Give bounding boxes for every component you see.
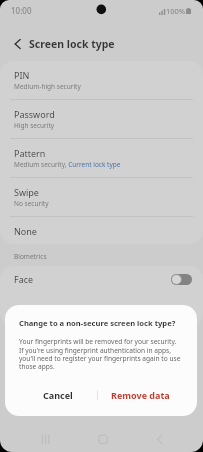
- staticText: PIN: [14, 69, 30, 81]
- staticText: Face: [14, 273, 34, 285]
- staticText: 10:00: [11, 5, 32, 16]
- staticText: Swipe: [14, 186, 39, 198]
- staticText: None: [14, 225, 37, 237]
- staticText: Medium-high security: [14, 82, 81, 91]
- button[interactable]: Recent apps: [33, 427, 57, 451]
- button[interactable]: Pattern: [0, 139, 203, 177]
- button[interactable]: Remove data: [98, 383, 183, 407]
- staticText: Biometrics: [14, 252, 47, 261]
- staticText: Medium security, Current lock type: [14, 160, 121, 169]
- staticText: No security: [14, 199, 49, 208]
- button[interactable]: Swipe: [0, 178, 203, 216]
- staticText: Remove data: [111, 389, 170, 401]
- button[interactable]: None: [0, 217, 203, 244]
- staticText: 100%: [166, 6, 185, 16]
- staticText: Cancel: [43, 389, 73, 401]
- staticText: Pattern: [14, 147, 46, 159]
- staticText: Screen lock type: [29, 37, 115, 51]
- staticText: High security: [14, 121, 55, 130]
- button[interactable]: Face: [0, 266, 203, 292]
- staticText: Password: [14, 108, 55, 120]
- button[interactable]: Password: [0, 100, 203, 138]
- staticText: Your fingerprints will be removed for yo…: [19, 337, 181, 370]
- button[interactable]: PIN: [0, 61, 203, 99]
- staticText: Change to a non-secure screen lock type?: [19, 318, 176, 328]
- button[interactable]: Cancel: [19, 383, 97, 407]
- button[interactable]: Navigate up: [5, 32, 29, 56]
